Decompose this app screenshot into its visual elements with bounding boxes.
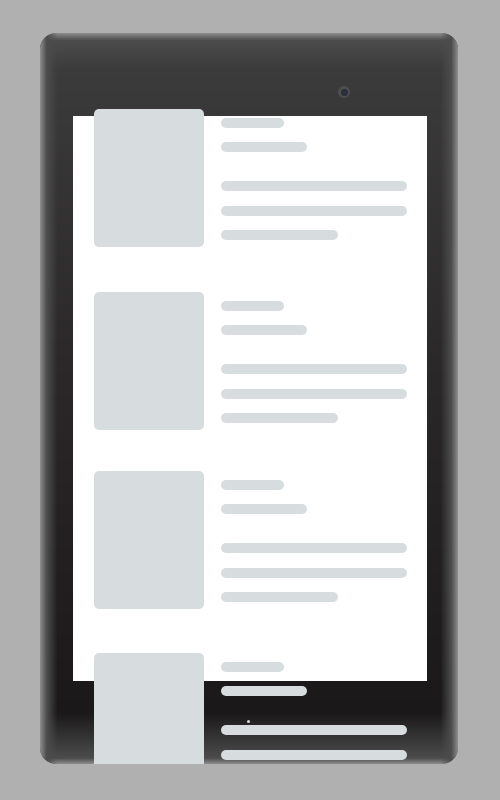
- button[interactable]: [73, 292, 427, 439]
- button[interactable]: [73, 471, 427, 618]
- other: Front camera: [338, 86, 350, 98]
- button[interactable]: [73, 109, 427, 256]
- button[interactable]: [73, 653, 427, 764]
